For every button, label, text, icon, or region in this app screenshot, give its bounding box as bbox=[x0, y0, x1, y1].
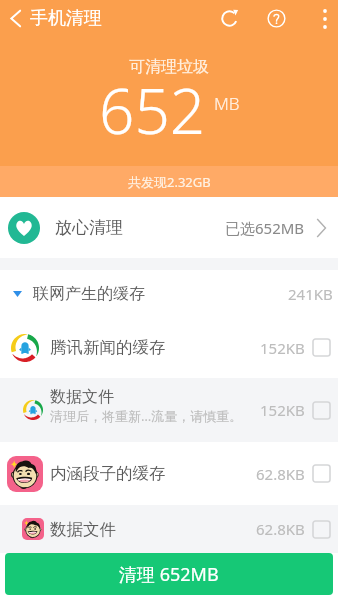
staticText: MB bbox=[214, 92, 240, 115]
staticText: 已选652MB bbox=[225, 218, 305, 238]
button[interactable]: 联网产生的缓存 bbox=[0, 270, 338, 317]
button[interactable]: Select 内涵段子的缓存 bbox=[312, 464, 331, 483]
staticText: 241KB bbox=[288, 284, 333, 304]
staticText: 152KB bbox=[260, 400, 305, 420]
button[interactable]: 放心清理 bbox=[0, 197, 338, 258]
staticText: 腾讯新闻的缓存 bbox=[50, 337, 166, 358]
button[interactable]: 内涵段子的缓存 bbox=[0, 442, 338, 505]
button[interactable]: Refresh bbox=[209, 0, 249, 37]
button[interactable]: 清理 652MB bbox=[5, 553, 333, 595]
button[interactable]: Select 腾讯新闻的缓存 bbox=[312, 338, 331, 357]
staticText: 清理 652MB bbox=[119, 562, 219, 587]
button[interactable]: Select 数据文件 bbox=[312, 520, 331, 539]
staticText: 共发现2.32GB bbox=[128, 173, 211, 191]
staticText: 内涵段子的缓存 bbox=[50, 463, 166, 484]
staticText: 152KB bbox=[260, 338, 305, 358]
staticText: 数据文件 bbox=[50, 387, 114, 407]
button[interactable]: Select 数据文件 bbox=[312, 401, 331, 420]
button[interactable]: 数据文件 bbox=[0, 378, 338, 442]
button[interactable]: 腾讯新闻的缓存 bbox=[0, 317, 338, 378]
button[interactable]: Back bbox=[0, 0, 30, 37]
staticText: 可清理垃圾 bbox=[129, 57, 209, 77]
staticText: 联网产生的缓存 bbox=[33, 284, 145, 304]
staticText: 数据文件 bbox=[50, 519, 116, 540]
staticText: 放心清理 bbox=[55, 217, 123, 238]
staticText: 62.8KB bbox=[256, 464, 305, 484]
button[interactable]: 数据文件 bbox=[0, 505, 338, 553]
staticText: 62.8KB bbox=[256, 519, 305, 539]
button[interactable]: More options bbox=[305, 0, 338, 37]
staticText: 652 bbox=[99, 68, 206, 152]
button[interactable]: Help bbox=[256, 0, 296, 37]
staticText: 手机清理 bbox=[30, 7, 102, 30]
staticText: 清理后，将重新…流量，请慎重。 bbox=[50, 407, 243, 425]
